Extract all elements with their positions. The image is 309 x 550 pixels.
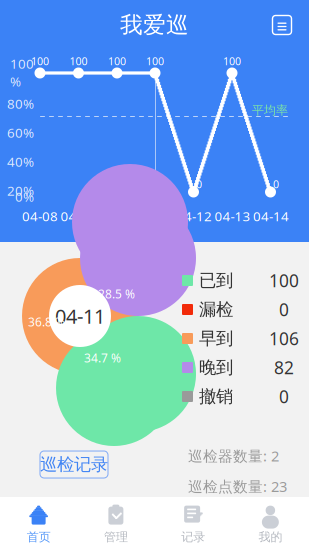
staticText: 我爱巡 bbox=[120, 11, 189, 39]
staticText: 0 bbox=[196, 177, 202, 191]
staticText: 28.5 % bbox=[98, 286, 135, 302]
staticText: 巡检点数量: 23 bbox=[188, 476, 287, 496]
button[interactable]: 我的 bbox=[232, 497, 309, 550]
staticText: 04-12 bbox=[176, 207, 212, 225]
staticText: 04-09 bbox=[60, 207, 96, 225]
staticText: 60% bbox=[7, 124, 34, 141]
staticText: 巡检器数量: 2 bbox=[188, 446, 279, 465]
staticText: 晚到 bbox=[199, 357, 233, 378]
staticText: 平均率 bbox=[252, 103, 288, 118]
staticText: 0 bbox=[279, 298, 289, 321]
staticText: 100 bbox=[269, 269, 299, 292]
staticText: 100 bbox=[69, 54, 87, 68]
staticText: 早到 bbox=[199, 328, 233, 349]
staticText: 100 bbox=[146, 54, 164, 68]
staticText: 巡检记录 bbox=[40, 454, 108, 475]
staticText: 82 bbox=[274, 356, 294, 379]
staticText: 已到 bbox=[199, 270, 233, 291]
staticText: 100% bbox=[10, 55, 34, 90]
staticText: 0 bbox=[273, 177, 279, 191]
staticText: 首页 bbox=[27, 530, 51, 544]
staticText: 40% bbox=[7, 153, 34, 170]
button[interactable]: 记录 bbox=[154, 497, 232, 550]
staticText: 04-14 bbox=[253, 207, 289, 225]
button[interactable]: 首页 bbox=[0, 497, 77, 550]
staticText: 记录 bbox=[181, 530, 205, 544]
button[interactable]: Calendar bbox=[266, 9, 298, 41]
staticText: 04-11 bbox=[55, 303, 105, 329]
staticText: 80% bbox=[7, 95, 34, 112]
button[interactable]: 管理 bbox=[77, 497, 154, 550]
staticText: 100 bbox=[223, 54, 241, 68]
staticText: 0% bbox=[15, 188, 34, 205]
staticText: 撤销 bbox=[199, 386, 233, 407]
staticText: 04-08 bbox=[22, 207, 58, 225]
button[interactable]: 巡检记录 bbox=[40, 451, 108, 478]
staticText: 我的 bbox=[258, 530, 282, 544]
staticText: 20% bbox=[7, 182, 34, 199]
staticText: 106 bbox=[269, 327, 299, 350]
staticText: 04-13 bbox=[214, 207, 250, 225]
staticText: 管理 bbox=[104, 530, 128, 544]
staticText: 36.8 % bbox=[28, 314, 65, 330]
staticText: 漏检 bbox=[199, 299, 233, 320]
staticText: 100 bbox=[108, 54, 126, 68]
staticText: 100 bbox=[31, 54, 49, 68]
staticText: 34.7 % bbox=[84, 350, 121, 366]
staticText: 0 bbox=[279, 385, 289, 408]
